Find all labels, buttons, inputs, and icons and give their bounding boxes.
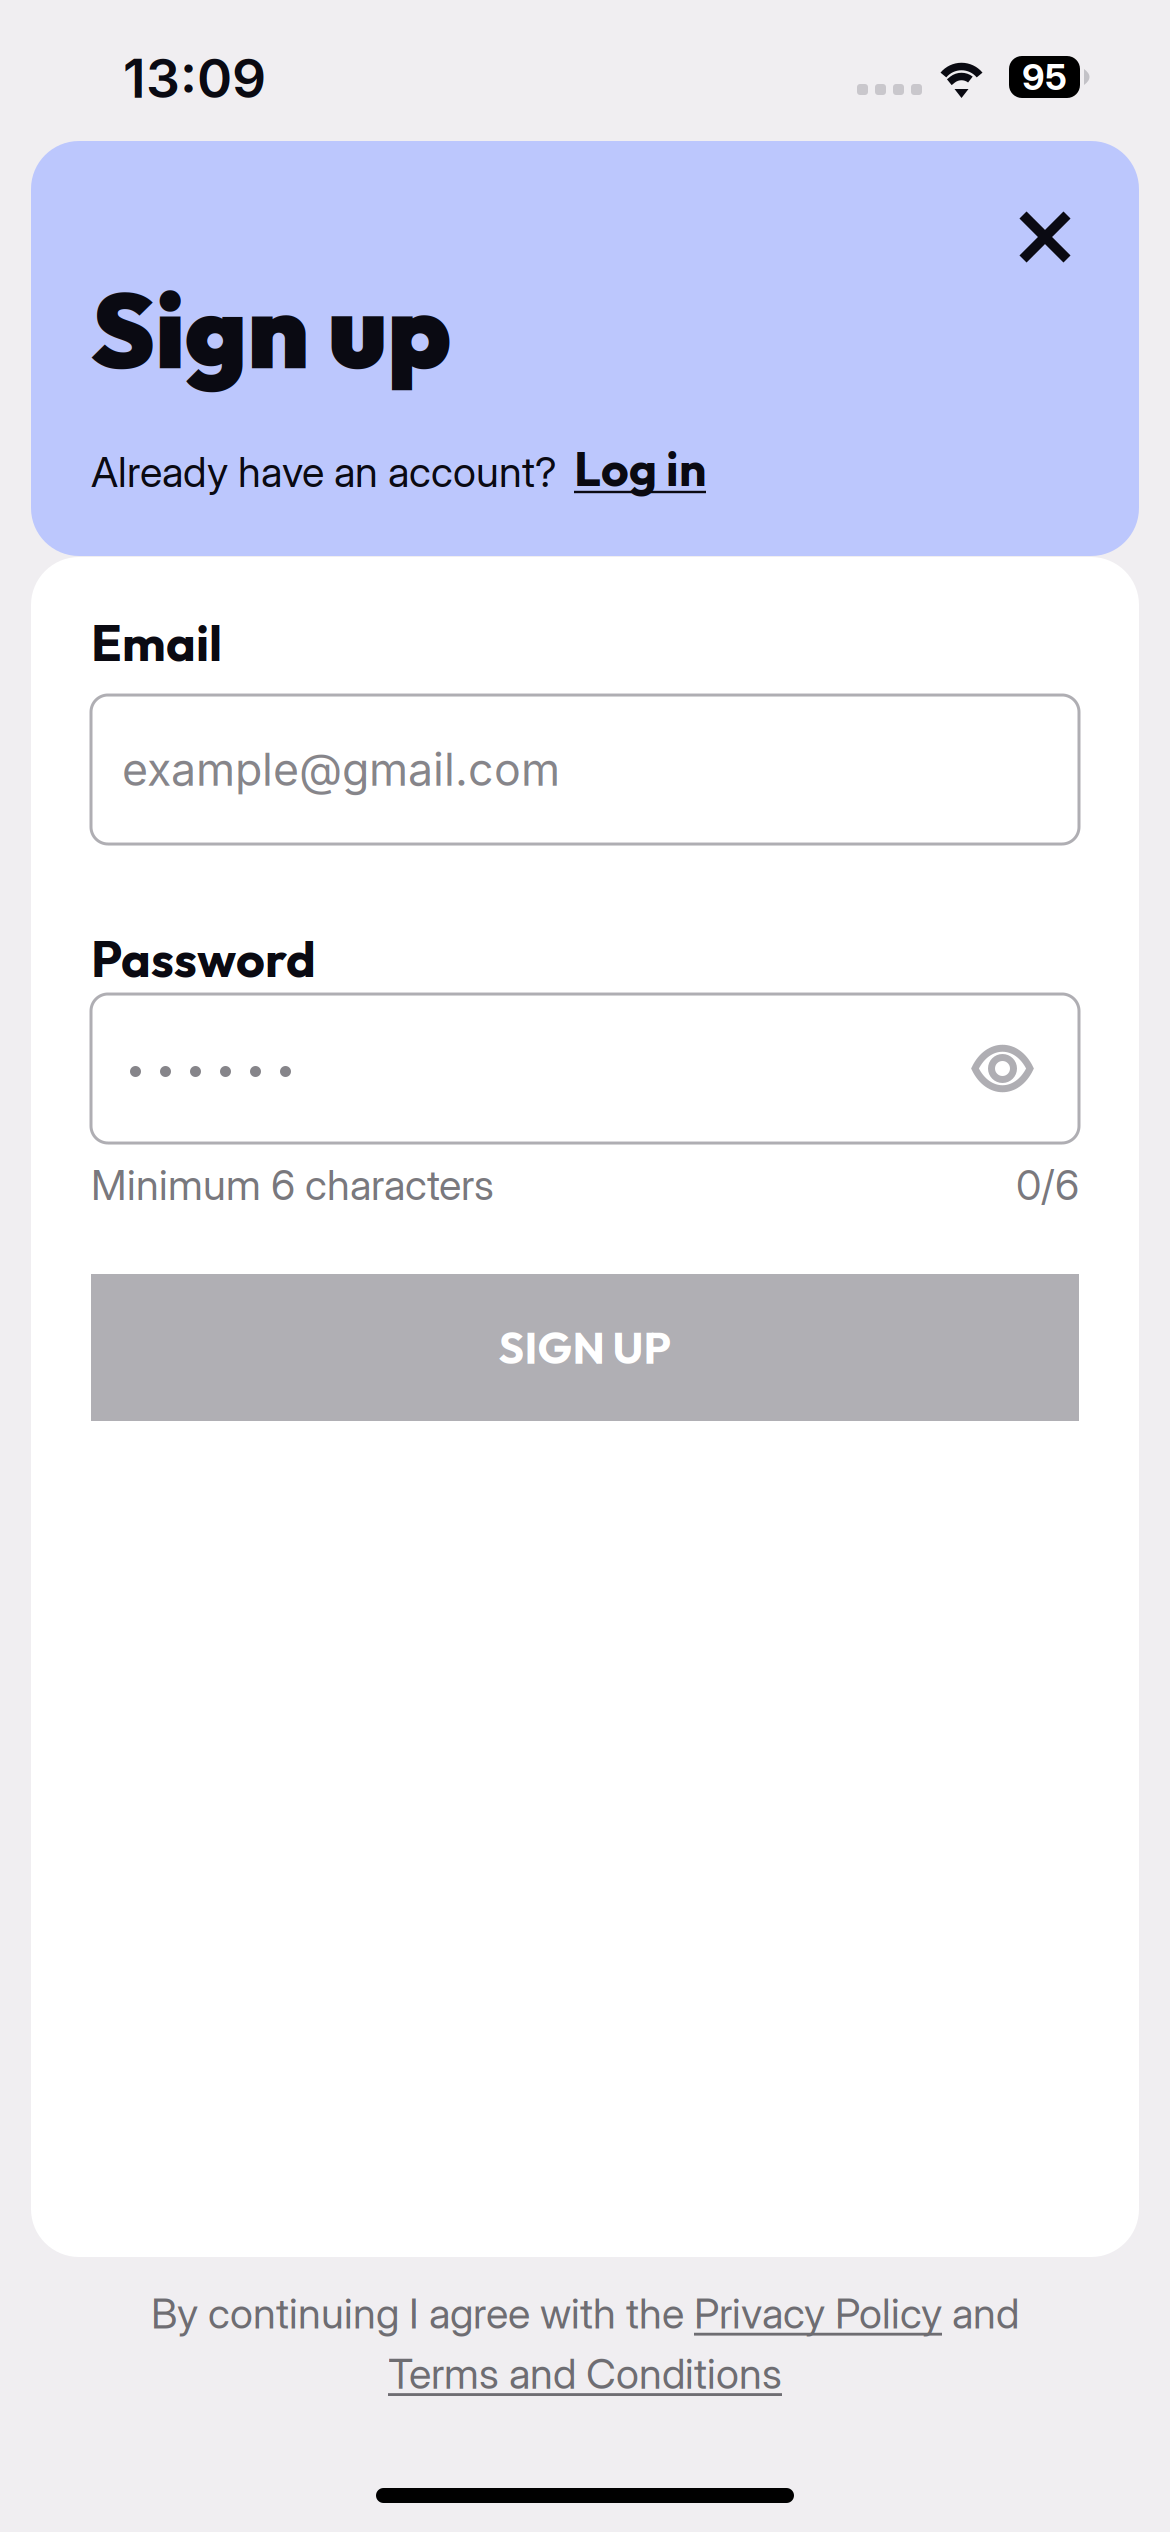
staticText: Already have an account?: [91, 447, 557, 497]
staticText: Email: [91, 611, 222, 674]
button[interactable]: SIGN UP: [91, 1274, 1079, 1421]
staticText: By continuing I agree with the Privacy P…: [151, 2289, 1019, 2338]
staticText: Sign up: [91, 263, 451, 396]
button[interactable]: example@gmail.com: [91, 695, 1079, 844]
staticText: SIGN UP: [498, 1320, 671, 1375]
staticText: 13:09: [123, 46, 266, 110]
staticText: 95: [1022, 55, 1067, 99]
button[interactable]: Show password: [945, 994, 1079, 1142]
button[interactable]: Log in: [566, 432, 714, 504]
button[interactable]: Terms and Conditions: [388, 2349, 782, 2399]
staticText: example@gmail.com: [122, 742, 560, 796]
staticText: 0/6: [1016, 1160, 1079, 1210]
staticText: Log in: [574, 438, 706, 498]
staticText: Minimum 6 characters: [91, 1160, 494, 1210]
button[interactable]: Close: [990, 182, 1100, 292]
staticText: Terms and Conditions: [388, 2349, 782, 2399]
staticText: Password: [91, 927, 316, 990]
